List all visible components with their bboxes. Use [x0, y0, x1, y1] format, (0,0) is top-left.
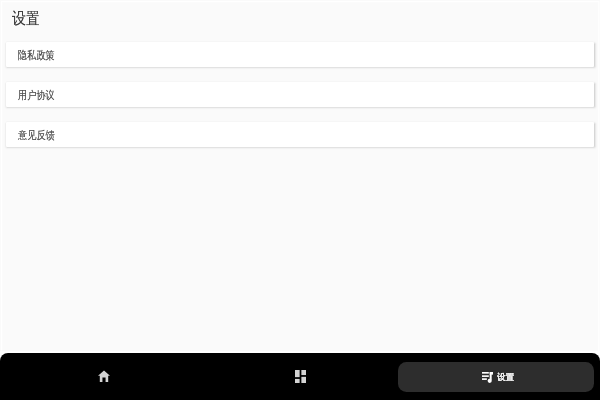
button[interactable]: Dashboard — [202, 353, 398, 400]
staticText: 隐私政策 — [18, 48, 55, 63]
staticText: 设置 — [497, 372, 515, 383]
button[interactable]: Home — [5, 353, 202, 400]
staticText: 用户协议 — [18, 88, 55, 103]
staticText: 隐私政策 — [18, 48, 55, 63]
button[interactable]: 意见反馈 — [6, 122, 594, 147]
button[interactable]: 隐私政策 — [6, 42, 594, 67]
staticText: 设置 — [497, 372, 515, 383]
staticText: 意见反馈 — [18, 128, 55, 143]
button[interactable]: 用户协议 — [6, 82, 594, 107]
staticText: 意见反馈 — [18, 128, 55, 143]
staticText: 用户协议 — [18, 88, 55, 103]
staticText: 设置 — [12, 9, 40, 29]
button[interactable]: 设置 — [398, 362, 594, 392]
staticText: 设置 — [12, 9, 40, 29]
